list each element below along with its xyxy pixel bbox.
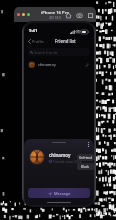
- staticText: 9:41: [29, 28, 38, 34]
- button[interactable]: Record video: [86, 11, 94, 19]
- button[interactable]: Block: [77, 163, 94, 170]
- staticText: iPhone 16 Pro: [41, 10, 69, 16]
- button[interactable]: Minimize: [22, 13, 25, 16]
- staticText: chinamoy: [49, 152, 71, 158]
- button[interactable]: Close: [17, 13, 20, 16]
- button[interactable]: Full screen: [27, 13, 30, 16]
- button[interactable]: More options: [85, 141, 92, 148]
- button[interactable]: Unfriend: [77, 154, 94, 161]
- button[interactable]: Profile photo: [29, 149, 45, 165]
- button[interactable]: Screenshot: [75, 11, 83, 19]
- staticText: chinamoy: [38, 62, 56, 67]
- staticText: Friend list: [55, 38, 76, 44]
- button[interactable]: Edit friend: [84, 62, 90, 68]
- staticText: Unfriend: [79, 156, 93, 160]
- staticText: Message: [54, 191, 71, 196]
- staticText: Friends since 2024: [53, 159, 82, 163]
- button[interactable]: Search friends: [28, 48, 90, 56]
- staticText: Search friends: [34, 50, 58, 55]
- button[interactable]: Message: [28, 188, 90, 198]
- button[interactable]: Back to Profile: [27, 38, 45, 45]
- button[interactable]: chinamoy: [24, 59, 94, 70]
- button[interactable]: Home: [64, 11, 72, 19]
- staticText: iOS 18.0: [49, 16, 61, 20]
- staticText: Block: [81, 165, 90, 169]
- staticText: Profile: [32, 39, 44, 44]
